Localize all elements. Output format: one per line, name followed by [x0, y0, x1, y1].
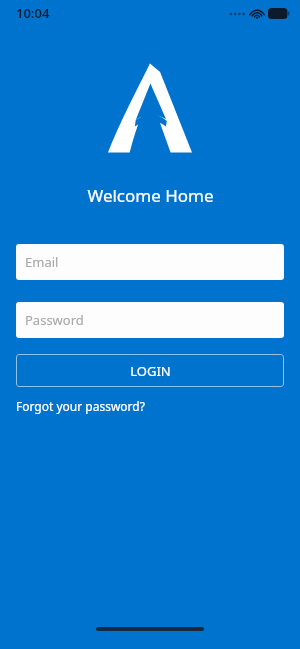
staticText: LOGIN: [130, 362, 171, 380]
other: Home indicator: [96, 627, 204, 631]
button[interactable]: Email: [16, 244, 284, 280]
staticText: Welcome Home: [87, 184, 214, 207]
button[interactable]: Password: [16, 302, 284, 338]
button[interactable]: LOGIN: [16, 354, 284, 387]
staticText: 10:04: [16, 4, 50, 22]
staticText: Forgot your password?: [16, 398, 145, 414]
staticText: Password: [25, 311, 84, 329]
staticText: Email: [25, 253, 59, 271]
button[interactable]: Forgot your password?: [16, 398, 145, 414]
